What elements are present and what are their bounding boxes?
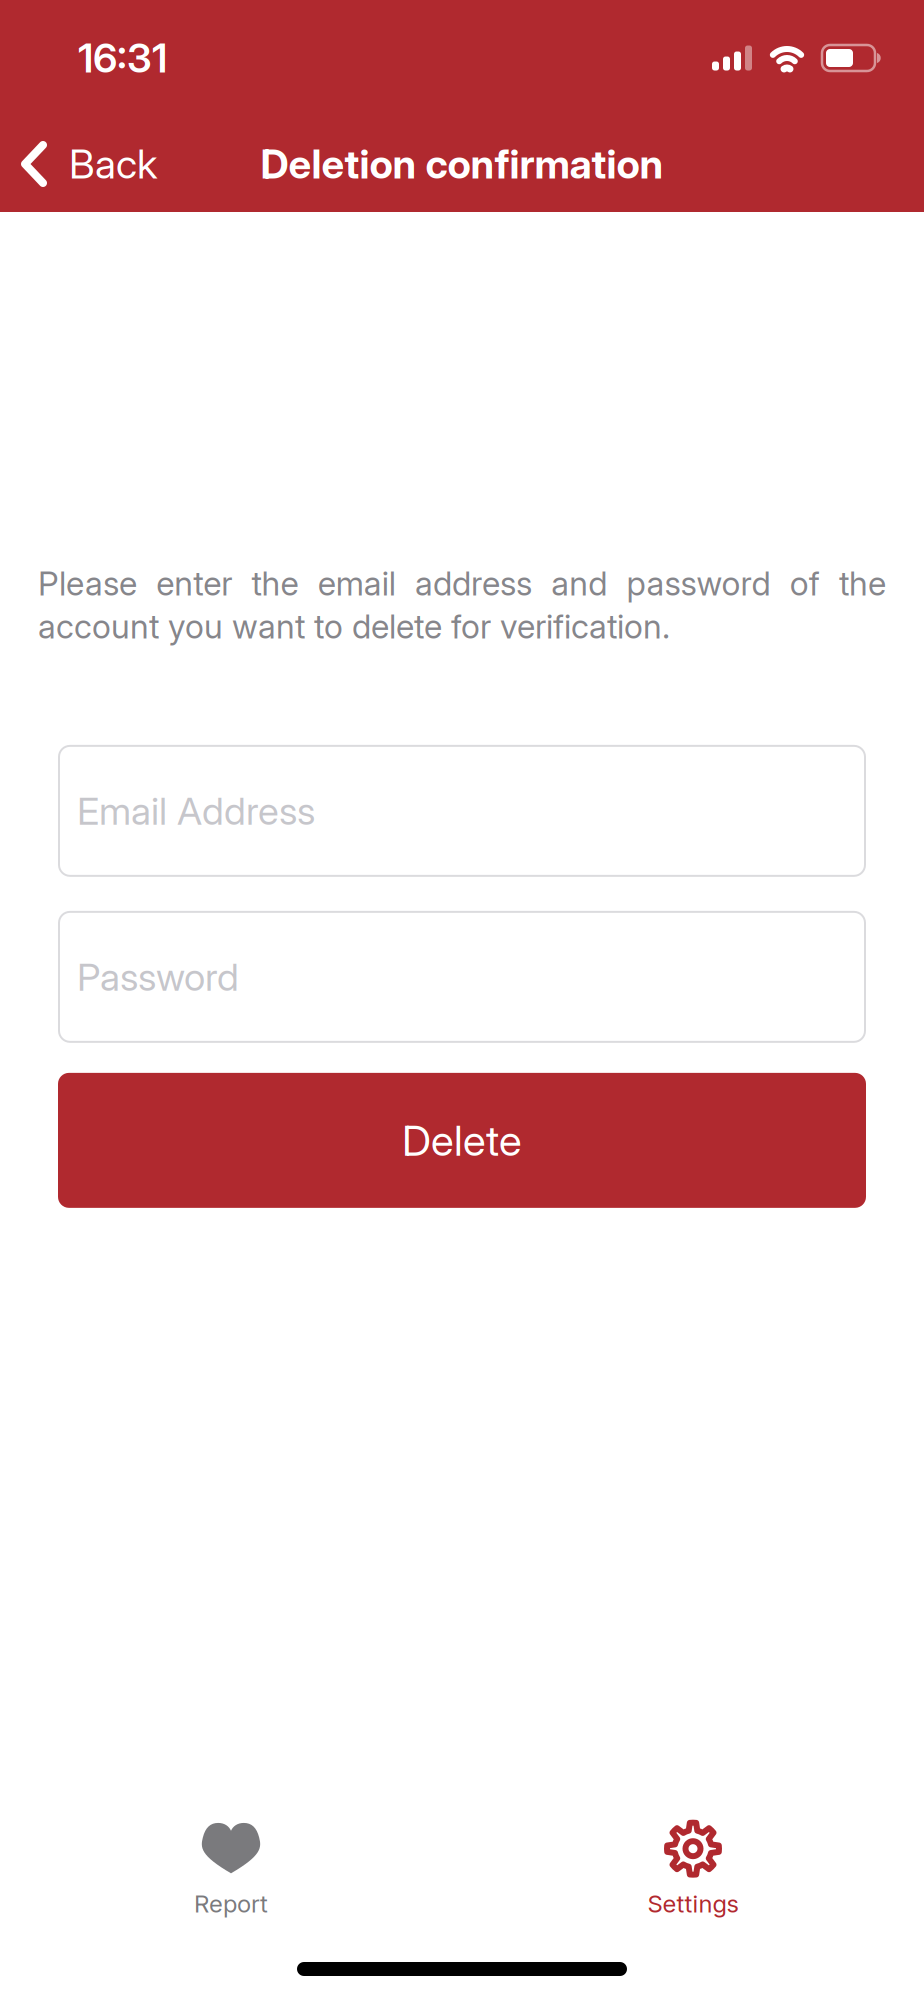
- button[interactable]: Password: [58, 911, 866, 1043]
- staticText: Deletion confirmation: [260, 140, 663, 188]
- staticText: enter: [156, 564, 232, 603]
- staticText: 16:31: [78, 34, 167, 82]
- button[interactable]: Report: [0, 1820, 462, 1918]
- staticText: password: [626, 564, 770, 603]
- staticText: of: [790, 564, 820, 603]
- staticText: Email Address: [77, 788, 315, 833]
- button[interactable]: Settings: [462, 1820, 924, 1918]
- staticText: Back: [69, 140, 157, 188]
- button[interactable]: Delete: [58, 1073, 866, 1208]
- button[interactable]: Back: [0, 140, 157, 188]
- staticText: the: [839, 564, 886, 603]
- staticText: account you want to delete for verificat…: [38, 607, 670, 646]
- staticText: Please: [38, 564, 137, 603]
- staticText: Report: [194, 1890, 268, 1918]
- staticText: address: [415, 564, 532, 603]
- staticText: Delete: [402, 1116, 522, 1165]
- staticText: Password: [77, 954, 239, 999]
- staticText: Settings: [647, 1890, 738, 1918]
- button[interactable]: Email Address: [58, 745, 866, 877]
- staticText: email: [318, 564, 396, 603]
- staticText: the: [251, 564, 298, 603]
- staticText: and: [551, 564, 607, 603]
